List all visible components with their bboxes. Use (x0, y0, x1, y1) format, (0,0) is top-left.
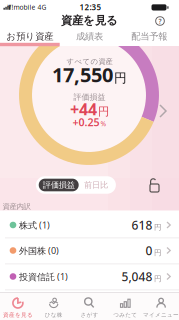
staticText: 成績表 (76, 31, 103, 42)
staticText: すべての資産 (66, 57, 112, 66)
button[interactable]: 配当予報 (119, 29, 179, 43)
staticText: 0 (145, 242, 152, 258)
staticText: 円 (114, 70, 127, 86)
button[interactable]: 資産を見る (0, 292, 36, 320)
staticText: 投資信託 (1) (19, 270, 68, 283)
button[interactable]: ひな株 (36, 292, 72, 320)
staticText: 資産を見る (61, 13, 118, 28)
button[interactable]: 評価損益 (39, 179, 79, 191)
button[interactable]: Help (152, 13, 168, 29)
staticText: さがす (80, 311, 98, 319)
staticText: ひな株 (45, 311, 63, 319)
staticText: 円 (154, 222, 161, 232)
staticText: 株式 (1) (19, 219, 50, 231)
button[interactable]: 投資信託 (1) (0, 264, 179, 289)
staticText: 前日比 (84, 180, 108, 190)
staticText: 評価損益 (43, 180, 75, 190)
staticText: 評価損益 (73, 92, 105, 102)
button[interactable]: 株式 (1) (0, 212, 179, 238)
button[interactable]: つみたて (107, 292, 143, 320)
staticText: % (100, 119, 106, 128)
button[interactable]: Details (156, 104, 170, 118)
staticText: 17,550 (52, 61, 113, 88)
staticText: +44 (70, 98, 97, 120)
staticText: Y!mobile 4G (7, 3, 46, 12)
button[interactable]: 前日比 (79, 176, 113, 194)
staticText: ? (158, 17, 161, 26)
button[interactable]: さがす (72, 292, 107, 320)
button[interactable]: お預り資産 (0, 29, 60, 43)
staticText: +0.25 (72, 115, 99, 129)
staticText: 12:35 (79, 2, 101, 12)
staticText: 資産内訳 (2, 202, 30, 211)
staticText: 円 (154, 248, 161, 257)
staticText: 外国株 (0) (19, 244, 59, 257)
staticText: 円 (98, 104, 109, 119)
staticText: 配当予報 (131, 31, 167, 42)
button[interactable]: 外国株 (0) (0, 238, 179, 263)
staticText: 5,048 (121, 268, 152, 284)
staticText: マイメニュー (143, 311, 179, 319)
staticText: 円 (154, 274, 161, 283)
button[interactable]: Lock (146, 175, 162, 193)
staticText: 618 (131, 217, 152, 233)
staticText: お預り資産 (6, 31, 53, 42)
button[interactable]: 成績表 (60, 29, 119, 43)
staticText: 資産を見る (3, 311, 33, 319)
button[interactable]: マイメニュー (143, 292, 179, 320)
staticText: つみたて (113, 311, 137, 319)
